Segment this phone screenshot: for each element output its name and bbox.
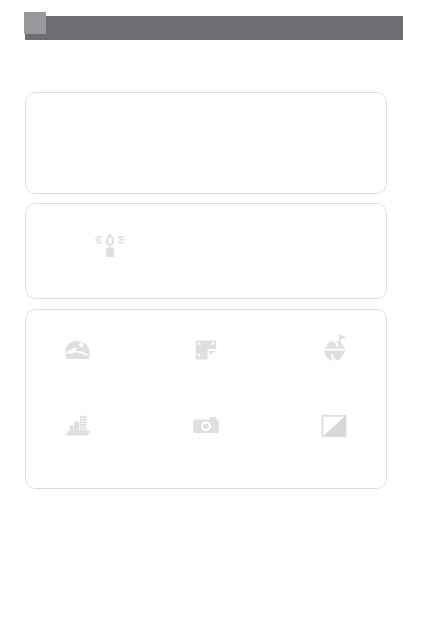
button[interactable]: Candle (25, 203, 387, 299)
button[interactable]: Globe (315, 331, 353, 369)
button[interactable] (25, 92, 387, 194)
button[interactable]: Bird (59, 331, 97, 369)
button[interactable]: Title bar (25, 16, 403, 40)
button[interactable]: Camera (187, 407, 225, 445)
button[interactable]: Bird (25, 309, 387, 489)
button[interactable]: Buildings (59, 407, 97, 445)
button[interactable]: Flag (187, 331, 225, 369)
button[interactable]: Candle (93, 229, 127, 263)
button[interactable]: Contrast (315, 407, 353, 445)
